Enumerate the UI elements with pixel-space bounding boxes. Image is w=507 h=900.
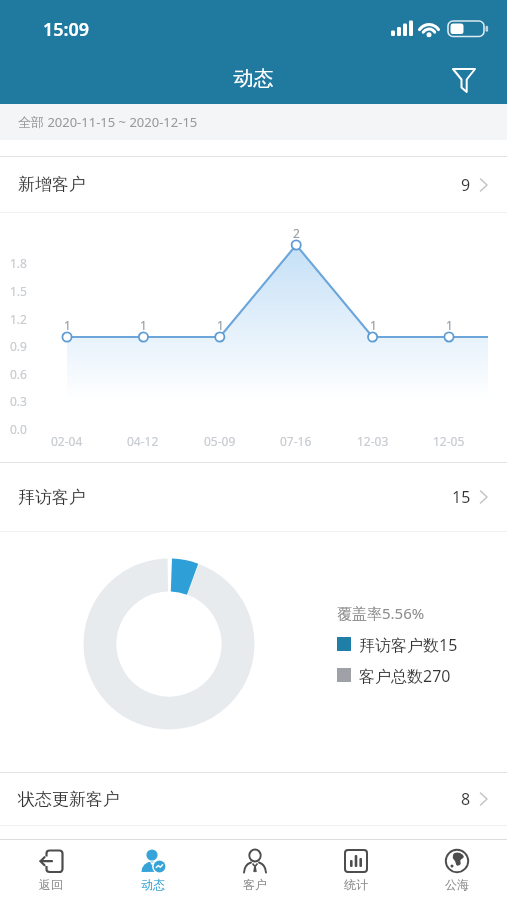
- staticText: 返回: [39, 877, 63, 892]
- button[interactable]: 统计: [305, 840, 406, 900]
- staticText: 04-12: [127, 433, 159, 449]
- staticText: 0.9: [10, 338, 27, 354]
- staticText: 公海: [445, 877, 469, 892]
- staticText: 拜访客户数15: [359, 634, 458, 656]
- button[interactable]: 拜访客户: [0, 463, 507, 531]
- staticText: 客户: [243, 877, 267, 892]
- button[interactable]: 动态: [102, 840, 204, 900]
- staticText: 0.3: [10, 393, 27, 409]
- button[interactable]: 新增客户: [0, 157, 507, 212]
- staticText: 客户总数270: [359, 665, 451, 687]
- staticText: 15: [452, 486, 471, 508]
- staticText: 1: [140, 317, 147, 333]
- staticText: 15:09: [43, 17, 90, 42]
- staticText: 1.8: [10, 255, 27, 271]
- button[interactable]: 客户: [204, 840, 305, 900]
- staticText: 1.5: [10, 283, 27, 299]
- staticText: 统计: [344, 877, 368, 892]
- staticText: 0.6: [10, 366, 27, 382]
- staticText: 状态更新客户: [18, 789, 120, 810]
- staticText: 12-05: [433, 433, 465, 449]
- button[interactable]: [442, 58, 486, 102]
- staticText: 0.0: [10, 421, 27, 437]
- staticText: 1: [64, 317, 71, 333]
- staticText: 12-03: [357, 433, 389, 449]
- staticText: 1: [446, 317, 453, 333]
- staticText: 动态: [141, 877, 165, 892]
- staticText: 动态: [0, 66, 507, 91]
- staticText: 2: [293, 225, 300, 241]
- button[interactable]: 返回: [0, 840, 102, 900]
- staticText: 1: [370, 317, 377, 333]
- staticText: 1: [217, 317, 224, 333]
- staticText: 全部 2020-11-15 ~ 2020-12-15: [18, 113, 198, 131]
- staticText: 1.2: [10, 311, 27, 327]
- button[interactable]: 状态更新客户: [0, 773, 507, 825]
- staticText: 新增客户: [18, 174, 86, 195]
- staticText: 07-16: [280, 433, 312, 449]
- staticText: 拜访客户: [18, 487, 86, 508]
- staticText: 02-04: [51, 433, 83, 449]
- staticText: 覆盖率5.56%: [337, 603, 425, 623]
- staticText: 8: [461, 788, 471, 810]
- button[interactable]: 公海: [406, 840, 507, 900]
- staticText: 9: [461, 174, 471, 196]
- staticText: 05-09: [204, 433, 236, 449]
